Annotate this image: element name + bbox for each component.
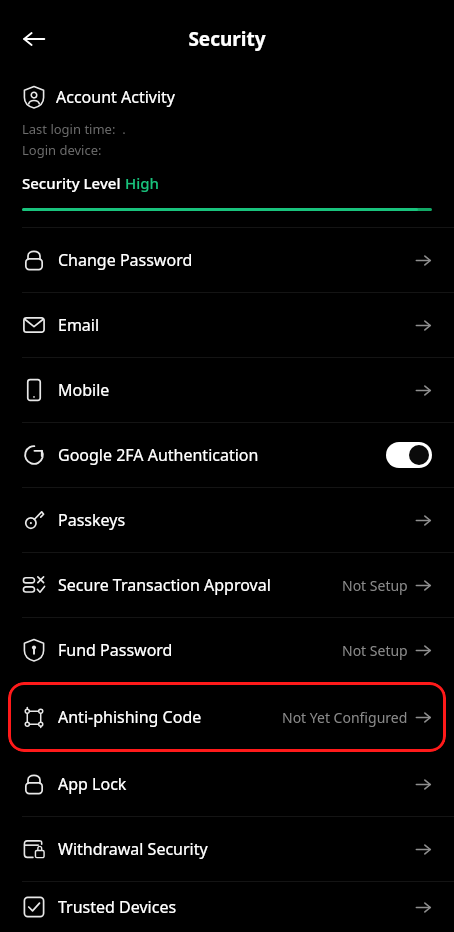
button[interactable]: Anti-phishing Code <box>8 682 446 752</box>
button[interactable]: Email <box>0 293 454 357</box>
button[interactable]: Google 2FA Authentication <box>0 423 454 487</box>
staticText: Not Setup <box>342 641 408 660</box>
staticText: Change Password <box>58 249 193 271</box>
staticText: Not Setup <box>342 576 408 595</box>
staticText: High <box>125 173 159 193</box>
staticText: Security Level <box>22 173 125 193</box>
staticText: Account Activity <box>56 86 175 108</box>
staticText: Not Yet Configured <box>282 708 408 727</box>
staticText: Last login time: . <box>22 120 126 138</box>
staticText: Passkeys <box>58 509 126 531</box>
staticText: Trusted Devices <box>58 896 177 918</box>
staticText: Login device: <box>22 141 102 159</box>
button[interactable]: Fund Password <box>0 618 454 682</box>
staticText: Security <box>188 26 266 52</box>
staticText: Mobile <box>58 379 110 401</box>
staticText: Secure Transaction Approval <box>58 574 271 596</box>
button[interactable]: Trusted Devices <box>0 882 454 932</box>
staticText: Email <box>58 314 100 336</box>
button[interactable]: App Lock <box>0 752 454 816</box>
staticText: Fund Password <box>58 639 173 661</box>
staticText: App Lock <box>58 773 127 795</box>
button[interactable]: Mobile <box>0 358 454 422</box>
button[interactable]: Change Password <box>0 228 454 292</box>
staticText: Anti-phishing Code <box>58 706 202 728</box>
staticText: Google 2FA Authentication <box>58 444 259 466</box>
button[interactable]: Toggle Google 2FA Authentication <box>386 442 432 468</box>
staticText: Withdrawal Security <box>58 838 208 860</box>
button[interactable]: Withdrawal Security <box>0 817 454 881</box>
button[interactable]: Secure Transaction Approval <box>0 553 454 617</box>
button[interactable]: Back <box>10 15 58 63</box>
button[interactable]: Passkeys <box>0 488 454 552</box>
